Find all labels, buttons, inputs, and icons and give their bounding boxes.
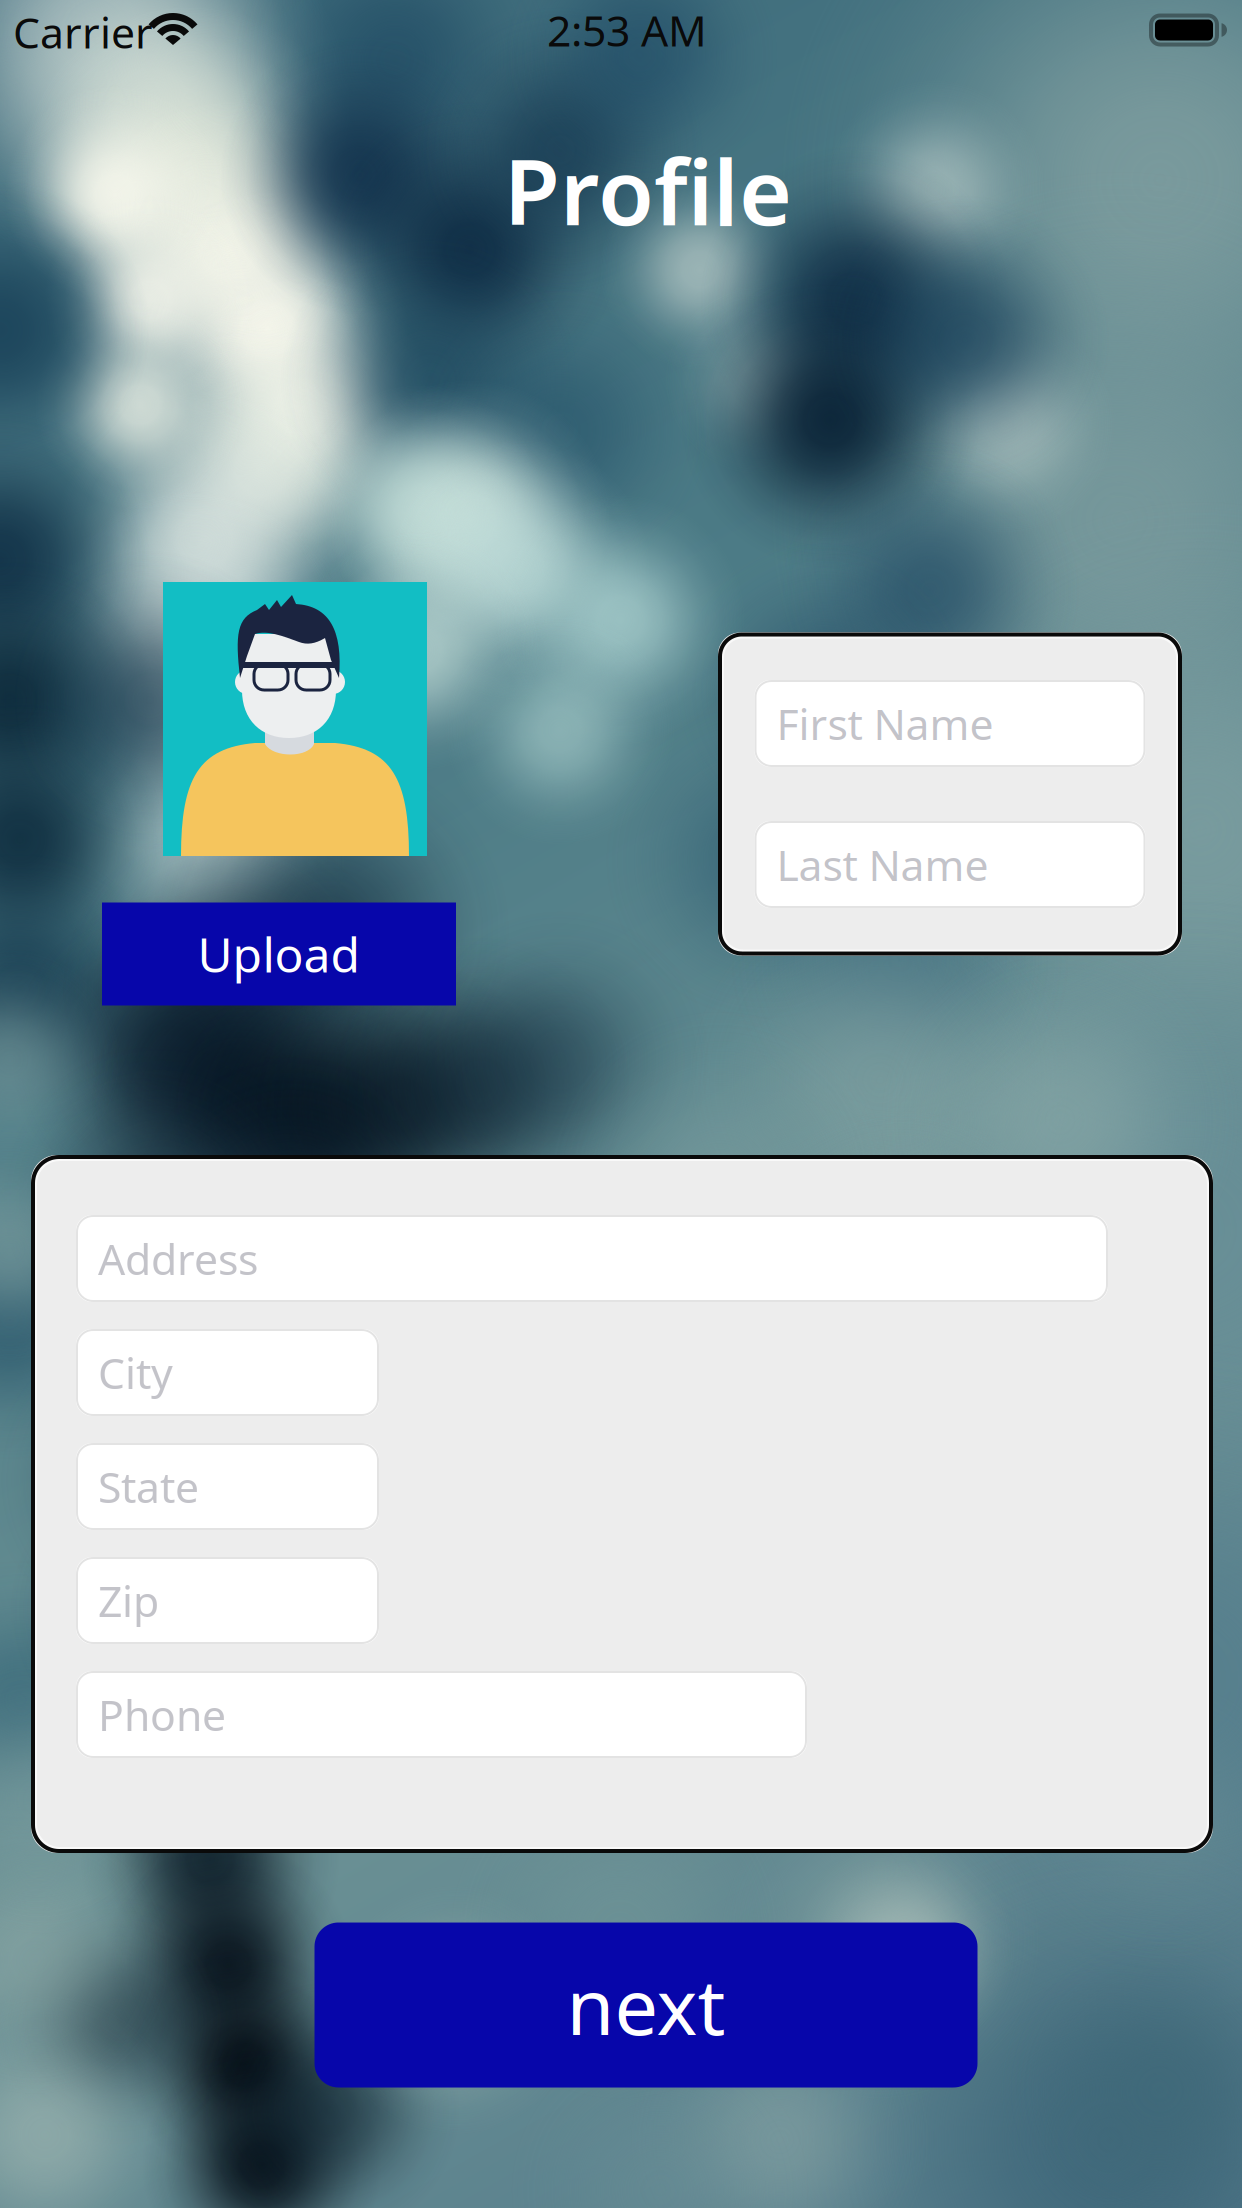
staticText: 2:53 AM: [547, 2, 707, 58]
staticText: Upload: [197, 922, 360, 986]
button[interactable]: Zip: [76, 1557, 379, 1644]
button[interactable]: Phone: [76, 1671, 807, 1758]
staticText: next: [566, 1954, 725, 2056]
staticText: First Name: [776, 695, 993, 752]
staticText: Profile: [504, 130, 792, 250]
button[interactable]: City: [76, 1329, 379, 1416]
button[interactable]: next: [314, 1922, 977, 2087]
staticText: State: [98, 1458, 199, 1515]
staticText: City: [98, 1344, 173, 1401]
staticText: Carrier: [13, 4, 153, 60]
button[interactable]: First Name: [754, 680, 1145, 767]
button[interactable]: Upload: [102, 902, 456, 1005]
staticText: Address: [98, 1230, 258, 1287]
button[interactable]: Address: [76, 1215, 1108, 1302]
staticText: Last Name: [776, 836, 988, 893]
button[interactable]: Last Name: [754, 821, 1145, 908]
button[interactable]: State: [76, 1443, 379, 1530]
staticText: Phone: [98, 1686, 226, 1743]
staticText: Zip: [98, 1572, 159, 1629]
